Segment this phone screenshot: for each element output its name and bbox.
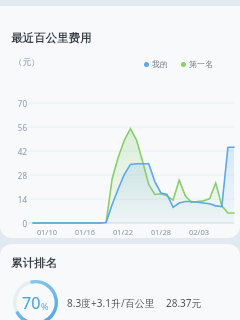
staticText: 我的	[152, 59, 168, 69]
button[interactable]: 第一名	[181, 59, 213, 69]
staticText: 02/03	[184, 227, 214, 237]
staticText: 第一名	[189, 59, 213, 69]
staticText: 01/16	[70, 227, 100, 237]
staticText: 70	[22, 292, 41, 314]
staticText: 56	[3, 122, 27, 133]
staticText: 70	[3, 98, 27, 109]
button[interactable]: 累计排名	[0, 244, 240, 320]
staticText: %	[41, 300, 49, 312]
other: 累计排名 70 百分比	[13, 280, 58, 320]
button[interactable]: 最近百公里费用	[0, 6, 240, 238]
staticText: 42	[3, 146, 27, 157]
staticText: 最近百公里费用	[11, 31, 92, 45]
staticText: 14	[3, 194, 27, 205]
staticText: 0	[3, 218, 27, 229]
staticText: 8.3度+3.1升/百公里	[67, 296, 155, 310]
staticText: 01/22	[108, 227, 138, 237]
button[interactable]: 我的	[144, 59, 168, 69]
staticText: 28.37元	[166, 296, 202, 310]
staticText: 01/28	[146, 227, 176, 237]
staticText: 28	[3, 170, 27, 181]
staticText: 累计排名	[11, 256, 57, 270]
staticText: （元）	[14, 57, 40, 68]
staticText: 01/10	[32, 227, 62, 237]
